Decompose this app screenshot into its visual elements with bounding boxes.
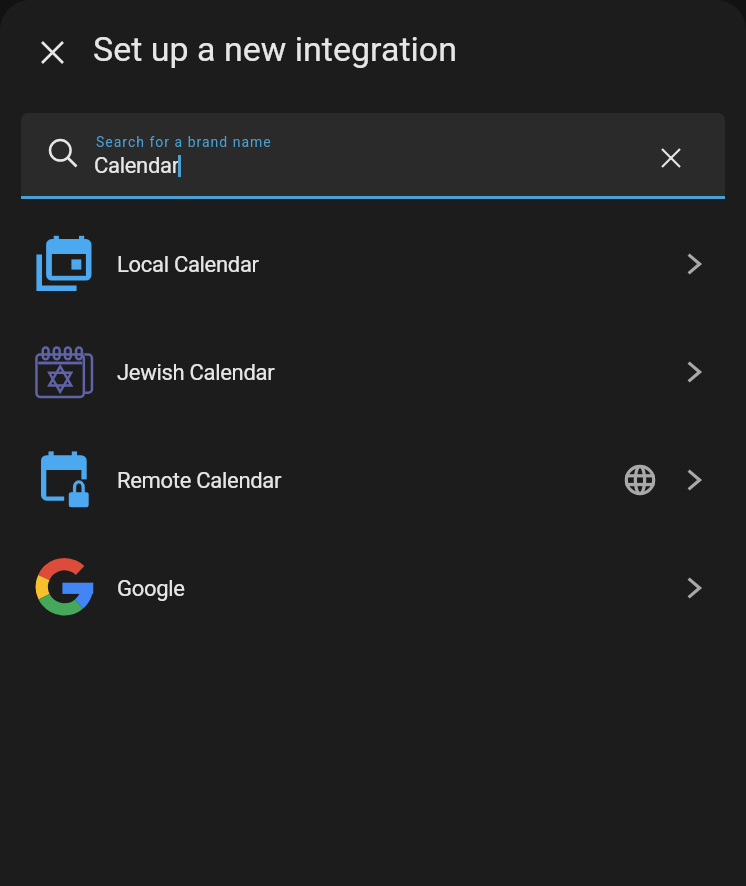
button[interactable] bbox=[21, 113, 725, 199]
button[interactable]: Remote Calendar bbox=[0, 426, 746, 534]
staticText: Local Calendar bbox=[117, 252, 259, 278]
staticText: Set up a new integration bbox=[93, 29, 457, 69]
staticText: Search for a brand name bbox=[96, 134, 272, 150]
button[interactable]: Jewish Calendar bbox=[0, 318, 746, 426]
other: Web bbox=[624, 464, 656, 496]
button[interactable]: Clear text bbox=[647, 134, 695, 182]
button[interactable]: Google bbox=[0, 534, 746, 642]
button[interactable]: Close bbox=[28, 28, 76, 76]
button[interactable]: Local Calendar bbox=[0, 210, 746, 318]
staticText: Google bbox=[117, 576, 185, 602]
staticText: Calendar bbox=[94, 153, 179, 179]
staticText: Remote Calendar bbox=[117, 468, 282, 494]
staticText: Jewish Calendar bbox=[117, 360, 275, 386]
